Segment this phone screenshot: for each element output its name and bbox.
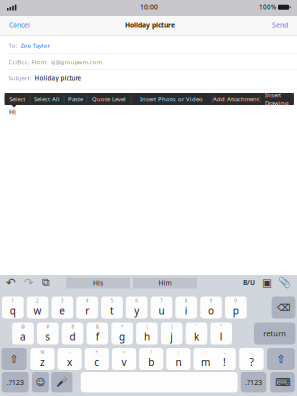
staticText: ' <box>196 324 197 330</box>
button[interactable]: Send <box>248 20 288 30</box>
staticText: return <box>263 328 286 338</box>
button[interactable]: + <box>85 348 109 370</box>
button[interactable]: Dictate <box>51 372 72 392</box>
staticText: ⇧ <box>276 353 285 365</box>
button[interactable]: ; <box>166 348 190 370</box>
staticText: k <box>194 330 199 343</box>
staticText: ? <box>249 355 253 369</box>
staticText: e <box>59 304 65 317</box>
button[interactable]: " <box>210 322 232 344</box>
button[interactable]: Undo <box>6 275 16 289</box>
button[interactable]: # <box>37 322 59 344</box>
button[interactable]: 6 <box>126 296 147 318</box>
staticText: + <box>95 349 98 355</box>
staticText: * <box>121 324 123 330</box>
staticText: Quote Level <box>92 95 126 103</box>
staticText: ↶ <box>6 275 16 289</box>
staticText: ▣ <box>262 276 272 289</box>
staticText: y <box>134 304 139 317</box>
button[interactable]: & <box>86 322 108 344</box>
button[interactable]: Text formatting <box>243 278 255 287</box>
button[interactable]: * <box>111 322 133 344</box>
button[interactable]: Quote Level <box>87 93 131 105</box>
button[interactable]: 9 <box>200 296 222 318</box>
button[interactable]: , <box>213 348 236 370</box>
button[interactable]: 0 <box>225 296 247 318</box>
staticText: To: <box>8 41 17 49</box>
staticText: .?123 <box>245 377 262 387</box>
staticText: 0 <box>234 298 237 304</box>
button[interactable]: 8 <box>175 296 197 318</box>
button[interactable]: ₴ <box>62 322 83 344</box>
button[interactable]: ) <box>161 322 182 344</box>
staticText: . <box>251 349 252 355</box>
button[interactable]: 4 <box>76 296 98 318</box>
staticText: / <box>150 349 152 355</box>
staticText: 1 <box>11 298 14 304</box>
button[interactable]: Him <box>133 277 197 288</box>
button[interactable]: Insert photo <box>262 276 272 289</box>
staticText: u <box>158 304 164 317</box>
button[interactable]: return <box>254 322 295 344</box>
button[interactable]: / <box>139 348 163 370</box>
button[interactable]: Attach file <box>277 276 290 289</box>
button[interactable]: Insert Photo or Video <box>131 93 212 105</box>
button[interactable]: 7 <box>151 296 172 318</box>
button[interactable]: Redo <box>24 275 34 289</box>
button[interactable]: Delete <box>272 296 295 318</box>
staticText: h <box>144 330 150 343</box>
button[interactable]: Paste <box>64 93 87 105</box>
button[interactable]: 2 <box>27 296 48 318</box>
button[interactable]: . <box>239 348 264 370</box>
button[interactable]: .?123 <box>2 372 29 392</box>
staticText: ; <box>178 349 179 355</box>
staticText: 100% <box>259 3 276 11</box>
button[interactable]: : <box>193 348 218 370</box>
button[interactable]: 1 <box>2 296 24 318</box>
staticText: ☺ <box>35 377 45 388</box>
button[interactable]: Select All <box>30 93 64 105</box>
staticText: Send <box>272 20 288 30</box>
button[interactable]: @ <box>12 322 34 344</box>
staticText: v <box>121 355 126 369</box>
button[interactable]: = <box>112 348 136 370</box>
staticText: c <box>94 355 99 369</box>
button[interactable]: 5 <box>101 296 123 318</box>
staticText: @ <box>21 324 25 330</box>
button[interactable]: .?123 <box>241 372 266 392</box>
button[interactable]: Cancel <box>9 20 49 30</box>
button[interactable]: Emoji <box>32 372 49 392</box>
staticText: ⌫ <box>277 302 290 313</box>
button[interactable]: - <box>57 348 82 370</box>
staticText: His <box>93 278 103 288</box>
button[interactable]: Add Attachment <box>212 93 260 105</box>
staticText: i <box>185 304 188 317</box>
staticText: # <box>46 324 49 330</box>
button[interactable]: 3 <box>52 296 73 318</box>
button[interactable]: Select <box>5 93 30 105</box>
button[interactable]: Shift <box>2 348 27 370</box>
button[interactable]: Hide keyboard <box>270 372 295 392</box>
button[interactable]: Shift <box>267 348 295 370</box>
staticText: .?123 <box>7 377 24 387</box>
button[interactable]: Insert Drawing <box>260 91 294 107</box>
button[interactable]: ( <box>136 322 158 344</box>
button[interactable]: Paste <box>42 277 50 288</box>
staticText: s <box>45 330 50 343</box>
staticText: Cancel <box>9 20 30 30</box>
staticText: 🎤 <box>56 377 68 388</box>
staticText: w <box>34 304 42 317</box>
staticText: 8 <box>185 298 188 304</box>
staticText: 6 <box>135 298 138 304</box>
staticText: Subject: <box>8 74 31 82</box>
button[interactable]: ' <box>186 322 207 344</box>
staticText: ⌨ <box>275 376 290 388</box>
staticText: n <box>175 355 181 369</box>
staticText: ) <box>171 324 172 330</box>
staticText: Add Attachment <box>213 95 259 103</box>
staticText: m <box>201 355 210 369</box>
button[interactable]: His <box>66 277 130 288</box>
button[interactable]: % <box>30 348 54 370</box>
staticText: 10:00 <box>140 2 158 12</box>
